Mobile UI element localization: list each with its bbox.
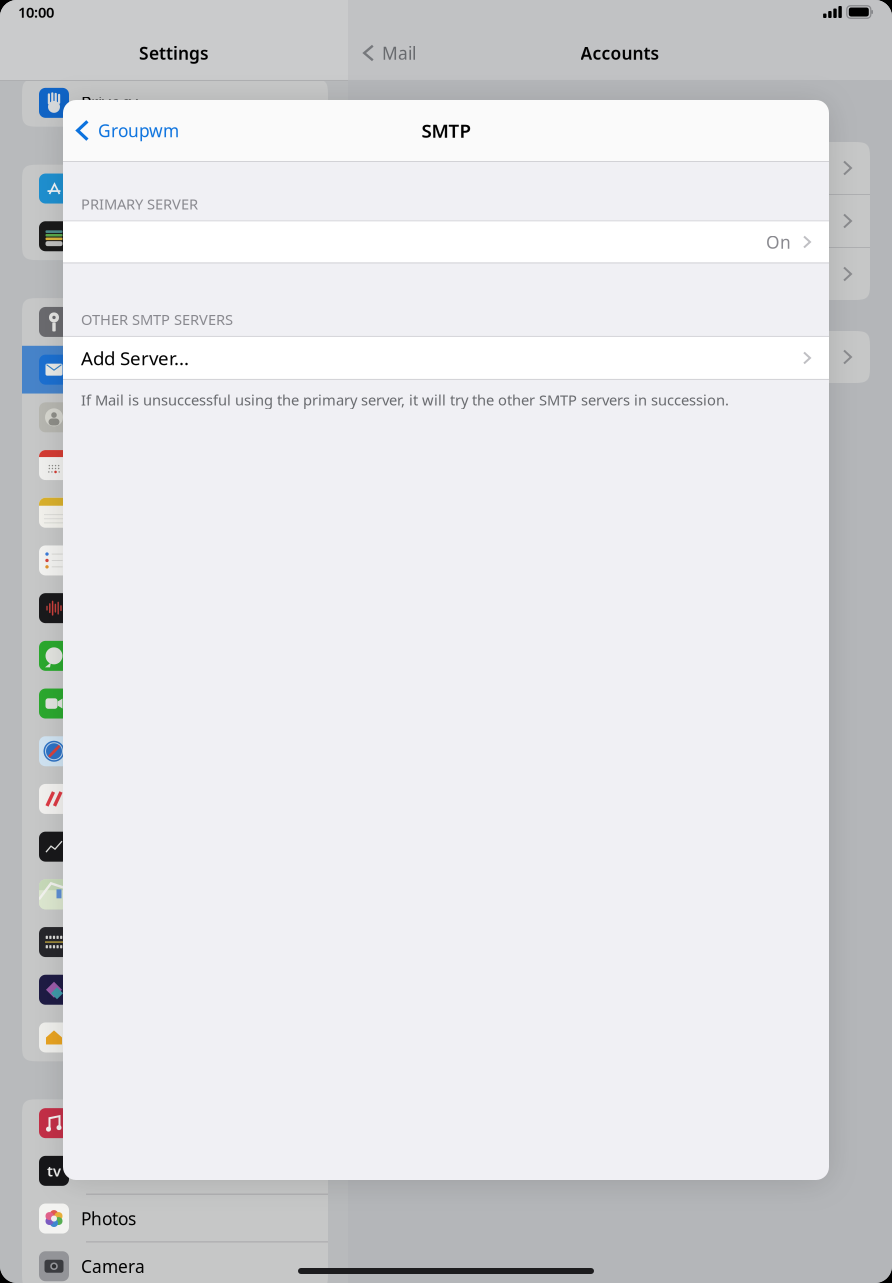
staticText: Settings: [139, 41, 209, 64]
staticText: tv: [47, 1161, 61, 1181]
button[interactable]: [370, 142, 870, 194]
staticText: SMTP: [421, 118, 470, 143]
button[interactable]: Photos: [22, 1195, 328, 1242]
button[interactable]: Shortcuts: [22, 918, 328, 966]
staticText: On: [766, 230, 791, 253]
button[interactable]: Mail: [22, 346, 328, 393]
button[interactable]: News: [22, 775, 328, 823]
staticText: Groupwm: [98, 119, 179, 142]
button[interactable]: App Store: [22, 165, 328, 212]
button[interactable]: On: [63, 221, 829, 262]
button[interactable]: [370, 248, 870, 300]
button[interactable]: Calendar: [22, 441, 328, 489]
button[interactable]: Camera: [22, 1242, 328, 1283]
button[interactable]: Mail: [348, 31, 426, 75]
button[interactable]: Siri: [22, 966, 328, 1014]
staticText: Privacy: [81, 91, 138, 114]
button[interactable]: Music: [22, 1099, 328, 1147]
button[interactable]: Safari: [22, 727, 328, 775]
button[interactable]: Contacts: [22, 393, 328, 441]
staticText: Accounts: [580, 41, 659, 64]
button[interactable]: tv: [22, 1147, 328, 1195]
button[interactable]: Home: [22, 1014, 328, 1061]
staticText: Passwords: [81, 310, 167, 333]
button[interactable]: Notes: [22, 489, 328, 537]
staticText: 10:00: [18, 2, 54, 22]
staticText: TV: [81, 1159, 101, 1182]
button[interactable]: Wallet: [22, 212, 328, 260]
button[interactable]: [370, 195, 870, 247]
staticText: Camera: [81, 1255, 145, 1278]
staticText: App Store: [81, 177, 162, 200]
staticText: Photos: [81, 1207, 136, 1230]
button[interactable]: Voice Memos: [22, 584, 328, 632]
button[interactable]: Maps: [22, 870, 328, 918]
button[interactable]: Messages: [22, 632, 328, 680]
staticText: Add Server...: [81, 346, 189, 370]
staticText: PRIMARY SERVER: [81, 194, 198, 213]
button[interactable]: Privacy: [22, 79, 328, 127]
staticText: If Mail is unsuccessful using the primar…: [81, 390, 729, 409]
button[interactable]: FaceTime: [22, 680, 328, 727]
staticText: OTHER SMTP SERVERS: [81, 309, 233, 329]
button[interactable]: Groupwm: [63, 100, 191, 160]
button[interactable]: Stocks: [22, 823, 328, 870]
button[interactable]: [370, 331, 870, 383]
button[interactable]: Add Server...: [63, 337, 829, 379]
button[interactable]: Reminders: [22, 537, 328, 584]
staticText: Mail: [382, 41, 416, 64]
button[interactable]: Passwords: [22, 298, 328, 346]
staticText: Mail: [81, 358, 115, 381]
